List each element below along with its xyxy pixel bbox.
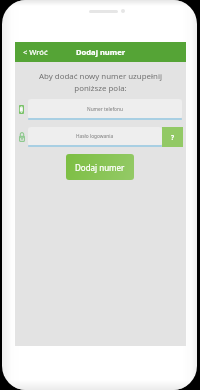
staticText: Numer telefonu	[87, 106, 123, 113]
staticText: Dodaj numer	[75, 162, 125, 173]
staticText: Hasło logowania	[76, 133, 114, 140]
button[interactable]: Dodaj numer	[66, 154, 134, 180]
button[interactable]: Numer telefonu	[28, 99, 182, 120]
button[interactable]: < Wróć	[15, 43, 56, 61]
staticText: Dodaj numer	[76, 47, 126, 57]
button[interactable]: Pomoc	[162, 127, 183, 147]
staticText: < Wróć	[23, 47, 48, 57]
staticText: ?	[171, 133, 175, 142]
button[interactable]: Hasło logowania	[28, 127, 162, 147]
staticText: Aby dodać nowy numer uzupełnij poniższe …	[15, 71, 186, 93]
